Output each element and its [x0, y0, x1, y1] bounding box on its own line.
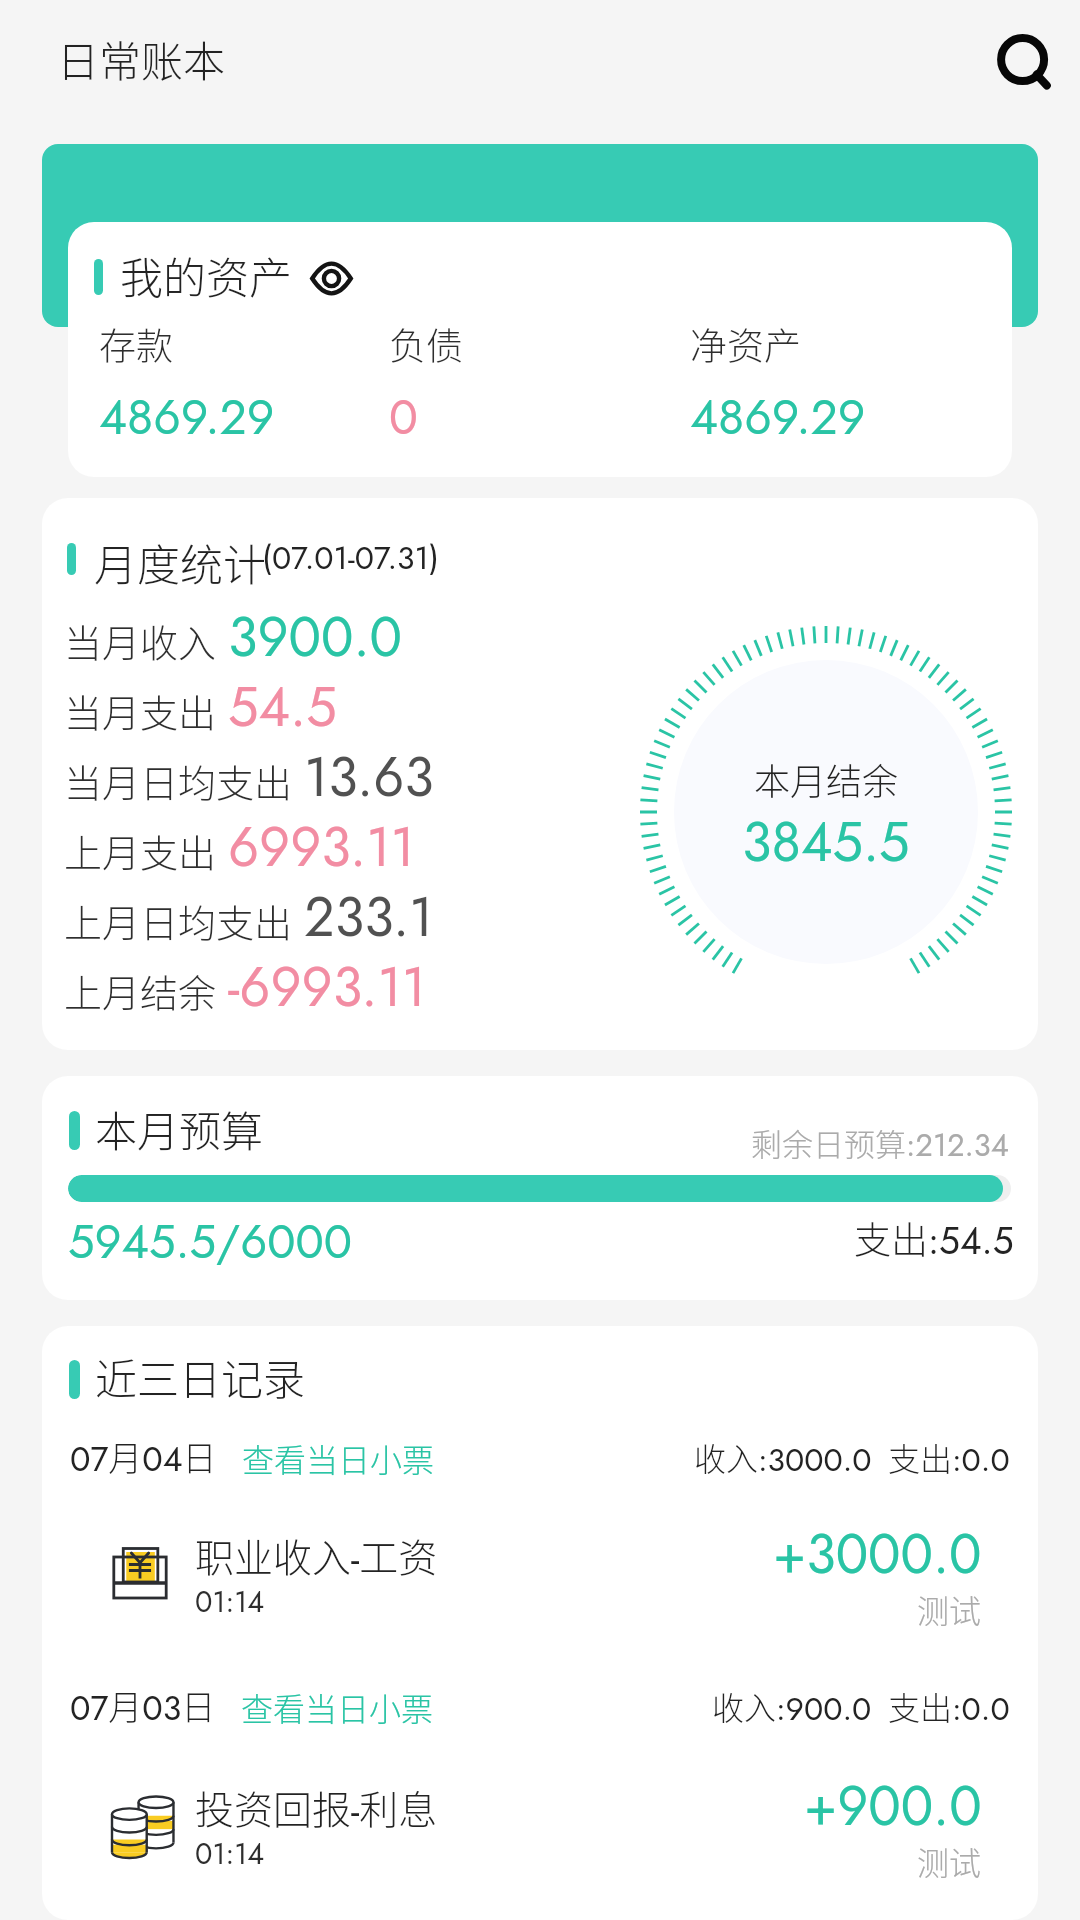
staticText: 我的资产 [120, 244, 292, 306]
staticText: 当月日均支出 [64, 753, 293, 808]
staticText: 0 [389, 383, 418, 452]
staticText: 支出:54.5 [854, 1211, 1014, 1268]
button[interactable]: 查看当日小票 [242, 1435, 435, 1481]
staticText: 上月支出 [64, 823, 217, 878]
staticText: (07.01-07.31) [262, 535, 439, 581]
staticText: 月度统计 [94, 531, 266, 593]
staticText: 上月日均支出 [64, 893, 293, 948]
staticText: 5945.5/6000 [68, 1208, 352, 1276]
staticText: 54.5 [228, 668, 337, 746]
staticText: 4869.29 [99, 383, 275, 452]
staticText: 剩余日预算:212.34 [751, 1120, 1009, 1168]
staticText: 4869.29 [690, 383, 866, 452]
staticText: 测试 [917, 1838, 982, 1884]
staticText: 13.63 [304, 738, 434, 816]
staticText: 查看当日小票 [242, 1435, 435, 1481]
button[interactable]: 投资回报-利息 [42, 1767, 1038, 1887]
staticText: 支出:0.0 [888, 1434, 1010, 1483]
staticText: 07月04日 [70, 1432, 217, 1484]
button[interactable]: 查看当日小票 [241, 1684, 434, 1730]
staticText: 支出:0.0 [888, 1683, 1010, 1732]
staticText: 3900.0 [228, 598, 402, 676]
staticText: 收入:3000.0 [694, 1434, 872, 1483]
staticText: 日常账本 [57, 28, 226, 89]
staticText: 233.1 [304, 878, 434, 956]
button[interactable]: Toggle asset visibility [310, 262, 353, 295]
staticText: 收入:900.0 [712, 1683, 872, 1732]
staticText: 07月03日 [70, 1681, 216, 1733]
staticText: +3000.0 [773, 1515, 982, 1593]
staticText: 本月结余 [754, 753, 899, 805]
staticText: 净资产 [690, 317, 801, 371]
staticText: 01:14 [195, 1833, 265, 1875]
staticText: 近三日记录 [95, 1346, 306, 1407]
staticText: 本月预算 [95, 1098, 264, 1159]
staticText: 投资回报-利息 [195, 1779, 438, 1839]
staticText: 职业收入-工资 [195, 1527, 438, 1587]
staticText: 查看当日小票 [241, 1684, 434, 1730]
staticText: 测试 [917, 1586, 982, 1632]
button[interactable]: 职业收入-工资 [42, 1515, 1038, 1635]
staticText: 3845.5 [742, 803, 910, 881]
staticText: 存款 [99, 317, 173, 371]
staticText: -6993.11 [228, 948, 427, 1026]
button[interactable]: Search [984, 30, 1068, 114]
staticText: 当月支出 [64, 683, 217, 738]
staticText: +900.0 [804, 1767, 982, 1845]
staticText: 上月结余 [64, 963, 217, 1018]
staticText: 当月收入 [64, 613, 217, 668]
staticText: 01:14 [195, 1581, 265, 1623]
staticText: 负债 [389, 317, 463, 371]
staticText: 6993.11 [228, 808, 415, 886]
